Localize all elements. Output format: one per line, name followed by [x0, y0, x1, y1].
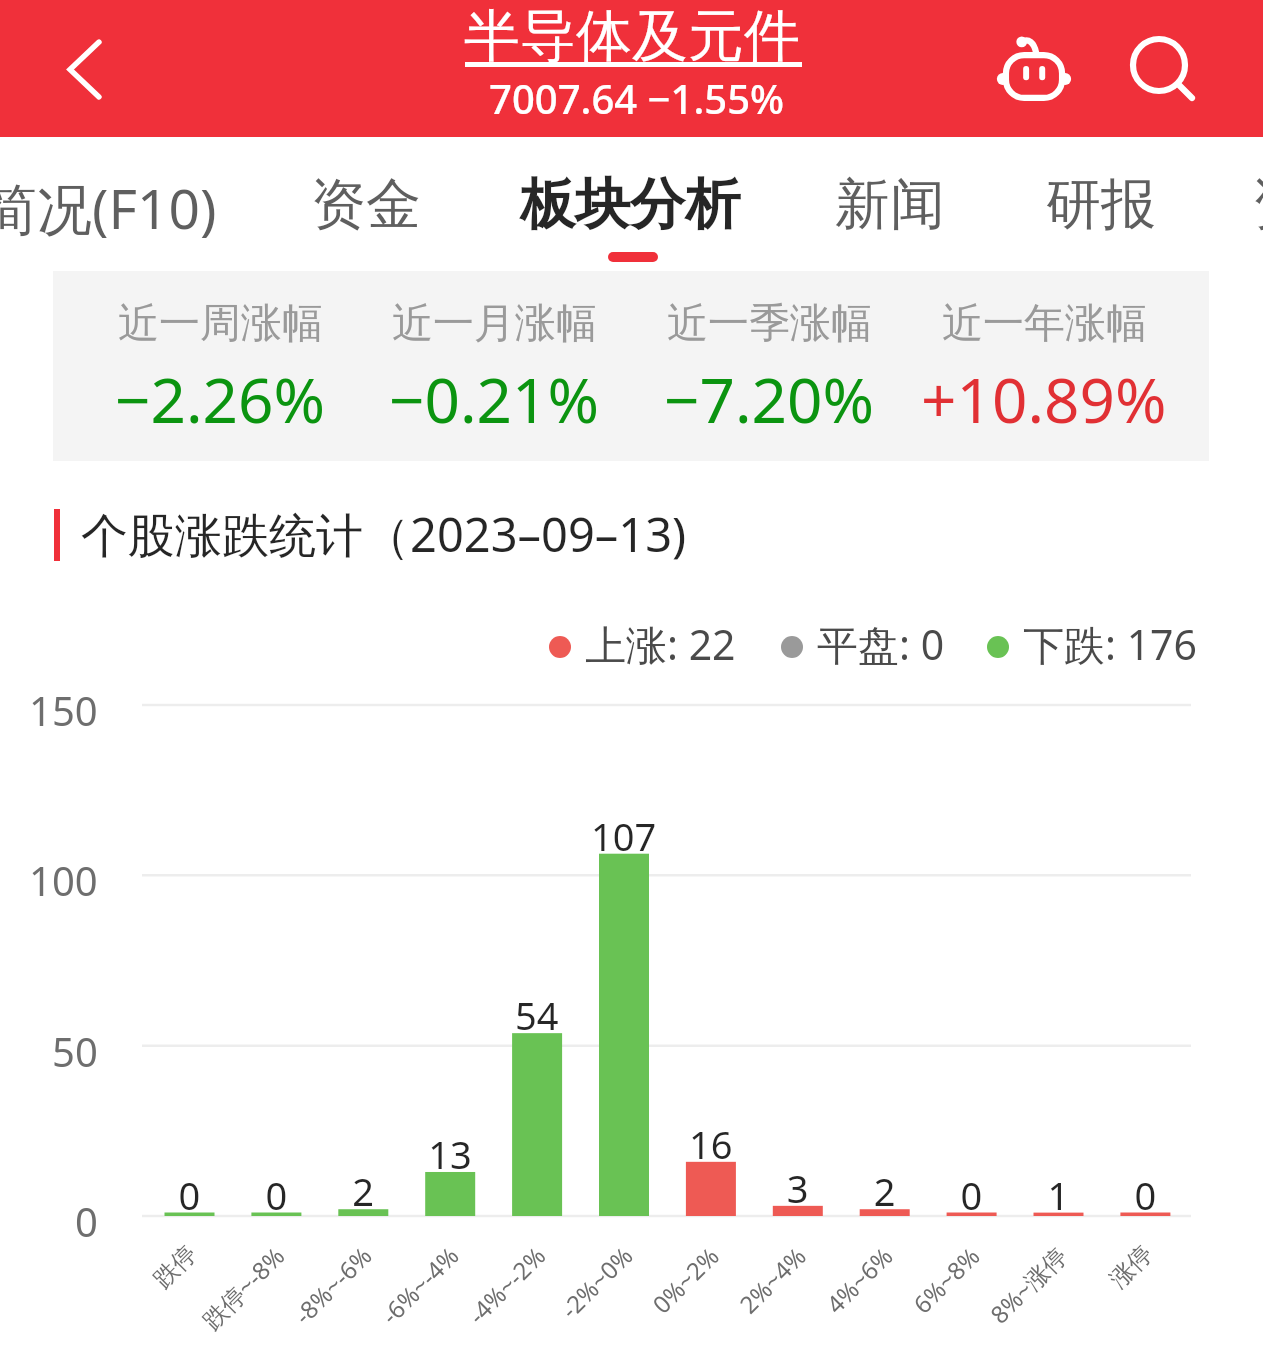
button[interactable]: 研报 — [1046, 170, 1156, 239]
button[interactable]: 上涨: 22 — [549, 616, 736, 668]
staticText: −0.21% — [389, 357, 599, 441]
staticText: 近一周涨幅 — [118, 298, 323, 350]
staticText: 上涨: 22 — [585, 616, 736, 668]
button[interactable]: 资金 — [311, 170, 421, 239]
staticText: 简况(F10) — [0, 170, 217, 245]
button[interactable]: 资金流向 — [1252, 170, 1263, 239]
button[interactable]: AI assistant — [977, 23, 1091, 113]
staticText: 下跌: 176 — [1023, 616, 1198, 668]
button[interactable]: 近一周涨幅 — [83, 271, 357, 461]
staticText: 近一月涨幅 — [392, 298, 597, 350]
staticText: 近一季涨幅 — [667, 298, 872, 350]
staticText: −7.20% — [664, 357, 874, 441]
staticText: 研报 — [1046, 170, 1156, 239]
button[interactable]: 新闻 — [835, 170, 945, 239]
staticText: 资金 — [311, 170, 421, 239]
button[interactable]: Search — [1108, 23, 1218, 113]
button[interactable]: 平盘: 0 — [781, 616, 945, 668]
button[interactable]: 近一月涨幅 — [357, 271, 631, 461]
staticText: +10.89% — [921, 357, 1167, 441]
staticText: 个股涨跌统计（2023–09–13) — [81, 502, 687, 566]
staticText: 资金流向 — [1252, 170, 1263, 239]
staticText: 新闻 — [835, 170, 945, 239]
button[interactable]: 下跌: 176 — [987, 616, 1198, 668]
button[interactable]: 简况(F10) — [0, 170, 217, 245]
button[interactable]: 近一年涨幅 — [907, 271, 1181, 461]
staticText: 半导体及元件 — [464, 1, 800, 72]
button[interactable]: 近一季涨幅 — [632, 271, 906, 461]
staticText: 平盘: 0 — [817, 616, 945, 668]
button[interactable]: 板块分析 — [520, 170, 740, 262]
staticText: 板块分析 — [520, 170, 740, 239]
staticText: 近一年涨幅 — [942, 298, 1147, 350]
button[interactable]: Back — [31, 22, 137, 116]
staticText: −2.26% — [115, 357, 325, 441]
staticText: 7007.64 −1.55% — [489, 71, 785, 125]
